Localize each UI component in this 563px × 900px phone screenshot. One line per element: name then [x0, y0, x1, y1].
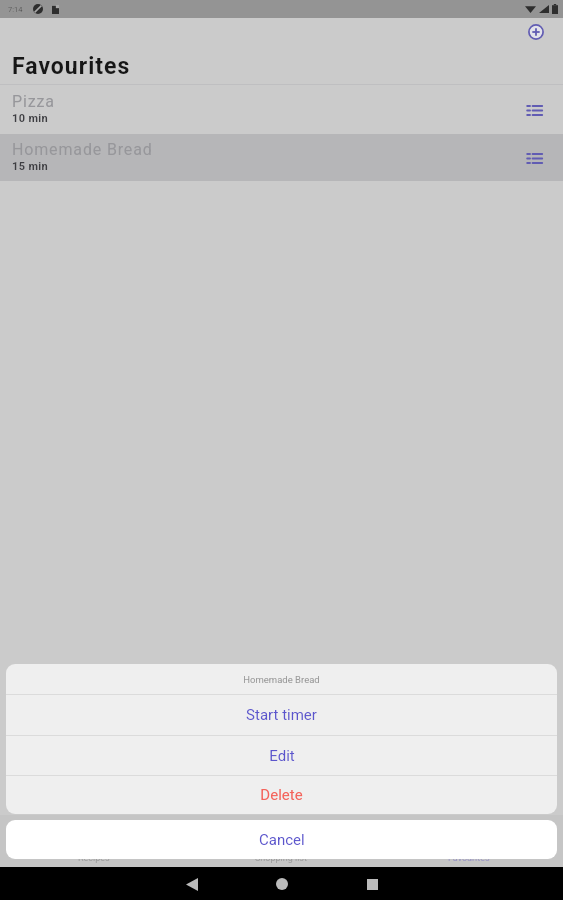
button[interactable]: Favourites — [375, 815, 563, 867]
button[interactable]: Recent apps — [357, 869, 387, 899]
staticText: Cancel — [259, 831, 305, 849]
staticText: Shopping list — [255, 853, 307, 864]
button[interactable]: Shopping list — [187, 815, 375, 867]
staticText: 7:14 — [8, 5, 23, 14]
staticText: Homemade Bread — [243, 674, 320, 685]
staticText: Homemade Bread — [12, 140, 153, 159]
staticText: Start timer — [246, 706, 317, 724]
button[interactable]: Back — [177, 869, 207, 899]
button[interactable]: Reorder — [522, 98, 546, 122]
staticText: Pizza — [12, 92, 55, 111]
button[interactable]: Start timer — [6, 695, 557, 735]
staticText: Delete — [260, 786, 303, 804]
button[interactable]: Recipes — [0, 815, 187, 867]
button[interactable]: Edit — [6, 736, 557, 775]
button[interactable]: Reorder — [522, 146, 546, 170]
button[interactable]: Homemade Bread — [6, 664, 557, 694]
button[interactable]: Delete — [6, 776, 557, 814]
button[interactable]: Homemade Bread — [0, 134, 563, 181]
staticText: Edit — [269, 747, 295, 765]
button[interactable]: Add recipe — [523, 19, 549, 45]
staticText: 10 min — [12, 112, 49, 125]
button[interactable]: Pizza — [0, 85, 563, 134]
staticText: 15 min — [12, 160, 49, 173]
staticText: Favourites — [12, 53, 131, 80]
staticText: Favourites — [448, 853, 490, 864]
button[interactable]: Cancel — [6, 820, 557, 859]
button[interactable]: Home — [267, 869, 297, 899]
staticText: Recipes — [78, 853, 110, 864]
